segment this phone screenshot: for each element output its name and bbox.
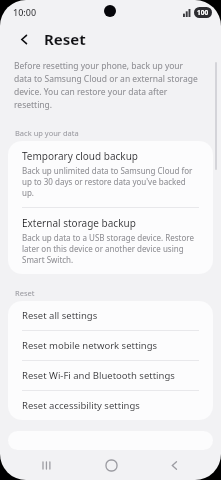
button[interactable]: Reset Wi-Fi and Bluetooth settings xyxy=(8,361,213,390)
button[interactable]: Home xyxy=(94,450,128,480)
staticText: External storage backup xyxy=(22,216,136,230)
staticText: Temporary cloud backup xyxy=(22,149,139,163)
staticText: Before resetting your phone, back up you… xyxy=(14,60,201,111)
staticText: Back up your data xyxy=(15,128,79,138)
button[interactable]: Reset all settings xyxy=(8,301,213,330)
staticText: Reset xyxy=(44,29,86,49)
staticText: 10:00 xyxy=(13,6,37,18)
staticText: Reset xyxy=(15,288,35,298)
staticText: Reset Wi-Fi and Bluetooth settings xyxy=(22,369,175,382)
button[interactable]: Recent apps xyxy=(30,450,64,480)
button[interactable]: Back xyxy=(157,450,191,480)
staticText: Back up unlimited data to Samsung Cloud … xyxy=(22,165,199,198)
button[interactable]: Reset accessibility settings xyxy=(8,391,213,420)
button[interactable]: Back xyxy=(12,27,36,51)
button[interactable]: Reset mobile network settings xyxy=(8,331,213,360)
staticText: Reset mobile network settings xyxy=(22,339,158,352)
staticText: Reset accessibility settings xyxy=(22,399,140,412)
button[interactable]: Temporary cloud backup xyxy=(8,141,213,207)
staticText: Reset all settings xyxy=(22,309,98,322)
staticText: 100 xyxy=(197,8,209,17)
button[interactable]: External storage backup xyxy=(8,208,213,274)
staticText: Back up data to a USB storage device. Re… xyxy=(22,232,199,265)
